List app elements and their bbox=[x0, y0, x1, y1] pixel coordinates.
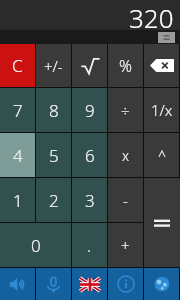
staticText: 3 bbox=[85, 189, 95, 212]
staticText: % bbox=[119, 55, 132, 77]
button[interactable]: 0 bbox=[0, 223, 71, 267]
button[interactable]: Voice input bbox=[36, 268, 71, 300]
button[interactable]: Equals bbox=[144, 178, 180, 267]
button[interactable]: Square root bbox=[72, 44, 107, 87]
button[interactable]: ^ bbox=[144, 133, 179, 177]
staticText: 4 bbox=[13, 144, 23, 167]
staticText: ^ bbox=[158, 146, 166, 165]
button[interactable]: Web bbox=[144, 268, 179, 300]
staticText: +/- bbox=[44, 56, 63, 76]
button[interactable]: x bbox=[108, 133, 143, 177]
staticText: C bbox=[12, 54, 23, 77]
staticText: . bbox=[87, 234, 92, 257]
staticText: 0 bbox=[31, 234, 41, 257]
button[interactable]: Language bbox=[72, 268, 107, 300]
staticText: 320 bbox=[129, 0, 174, 30]
button[interactable]: 6 bbox=[72, 133, 107, 177]
staticText: 8 bbox=[49, 99, 59, 122]
staticText: 6 bbox=[85, 144, 95, 167]
staticText: x bbox=[122, 146, 130, 165]
button[interactable]: - bbox=[108, 178, 143, 222]
button[interactable]: + bbox=[108, 223, 143, 267]
button[interactable]: +/- bbox=[36, 44, 71, 87]
button[interactable]: 7 bbox=[0, 88, 35, 132]
button[interactable]: 9 bbox=[72, 88, 107, 132]
button[interactable]: ÷ bbox=[108, 88, 143, 132]
button[interactable]: 4 bbox=[0, 133, 35, 177]
button[interactable]: . bbox=[72, 223, 107, 267]
staticText: 1/x bbox=[151, 100, 173, 120]
button[interactable]: Info bbox=[108, 268, 143, 300]
button[interactable]: C bbox=[0, 44, 35, 87]
staticText: - bbox=[123, 190, 128, 210]
button[interactable]: 1 bbox=[0, 178, 35, 222]
button[interactable]: 8 bbox=[36, 88, 71, 132]
button[interactable]: Expand history bbox=[158, 32, 175, 43]
staticText: + bbox=[121, 235, 130, 255]
button[interactable]: 1/x bbox=[144, 88, 179, 132]
staticText: ÷ bbox=[121, 100, 130, 120]
button[interactable]: 5 bbox=[36, 133, 71, 177]
button[interactable]: % bbox=[108, 44, 143, 87]
staticText: 2 bbox=[49, 189, 59, 212]
staticText: 7 bbox=[13, 99, 23, 122]
staticText: 5 bbox=[49, 144, 59, 167]
staticText: 9 bbox=[85, 99, 95, 122]
button[interactable]: Sound bbox=[0, 268, 35, 300]
staticText: 1 bbox=[13, 189, 23, 212]
button[interactable]: 2 bbox=[36, 178, 71, 222]
button[interactable]: 3 bbox=[72, 178, 107, 222]
button[interactable]: Backspace bbox=[144, 44, 179, 87]
